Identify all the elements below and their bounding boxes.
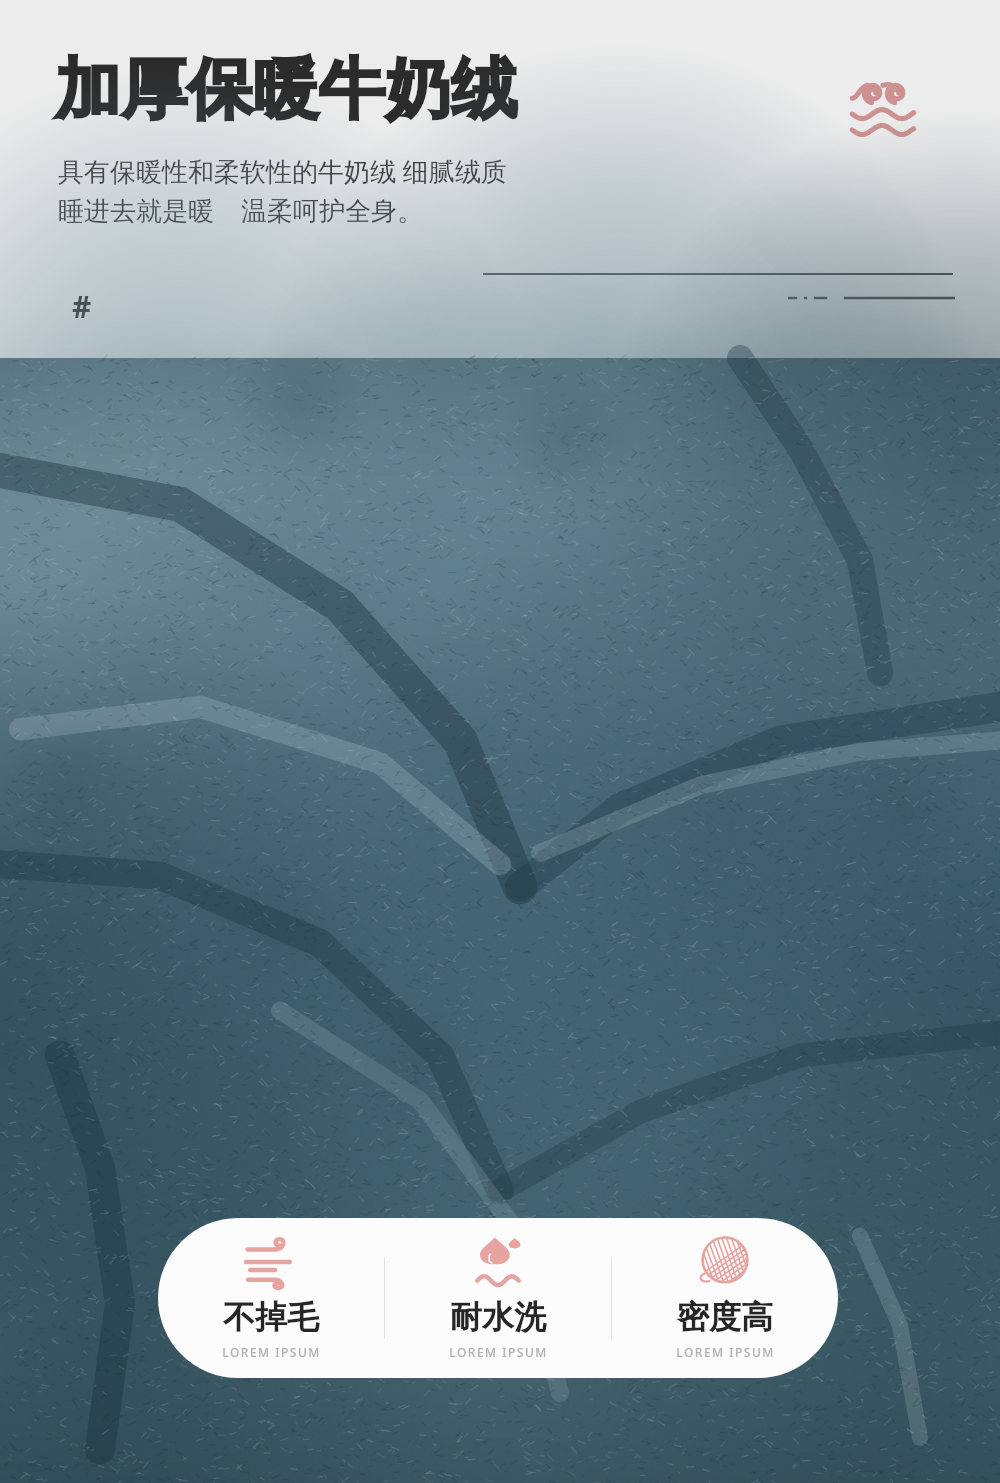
other: Soft warm fabric	[851, 79, 915, 139]
staticText: LOREM IPSUM	[676, 1344, 775, 1360]
staticText: 不掉毛	[223, 1297, 319, 1337]
button[interactable]: No shedding	[158, 1218, 384, 1378]
other: High density	[699, 1236, 751, 1288]
staticText: 加厚保暖牛奶绒	[55, 48, 517, 131]
button[interactable]: Machine washable	[385, 1218, 611, 1378]
other: No shedding	[245, 1236, 297, 1288]
staticText: #	[72, 286, 92, 327]
staticText: 具有保暖性和柔软性的牛奶绒 细腻绒质	[58, 153, 507, 189]
staticText: 耐水洗	[450, 1297, 546, 1337]
staticText: 密度高	[677, 1297, 773, 1337]
staticText: LOREM IPSUM	[222, 1344, 321, 1360]
button[interactable]: High density	[612, 1218, 838, 1378]
staticText: LOREM IPSUM	[449, 1344, 548, 1360]
staticText: 睡进去就是暖 温柔呵护全身。	[58, 192, 424, 228]
other: Machine washable	[472, 1236, 524, 1288]
